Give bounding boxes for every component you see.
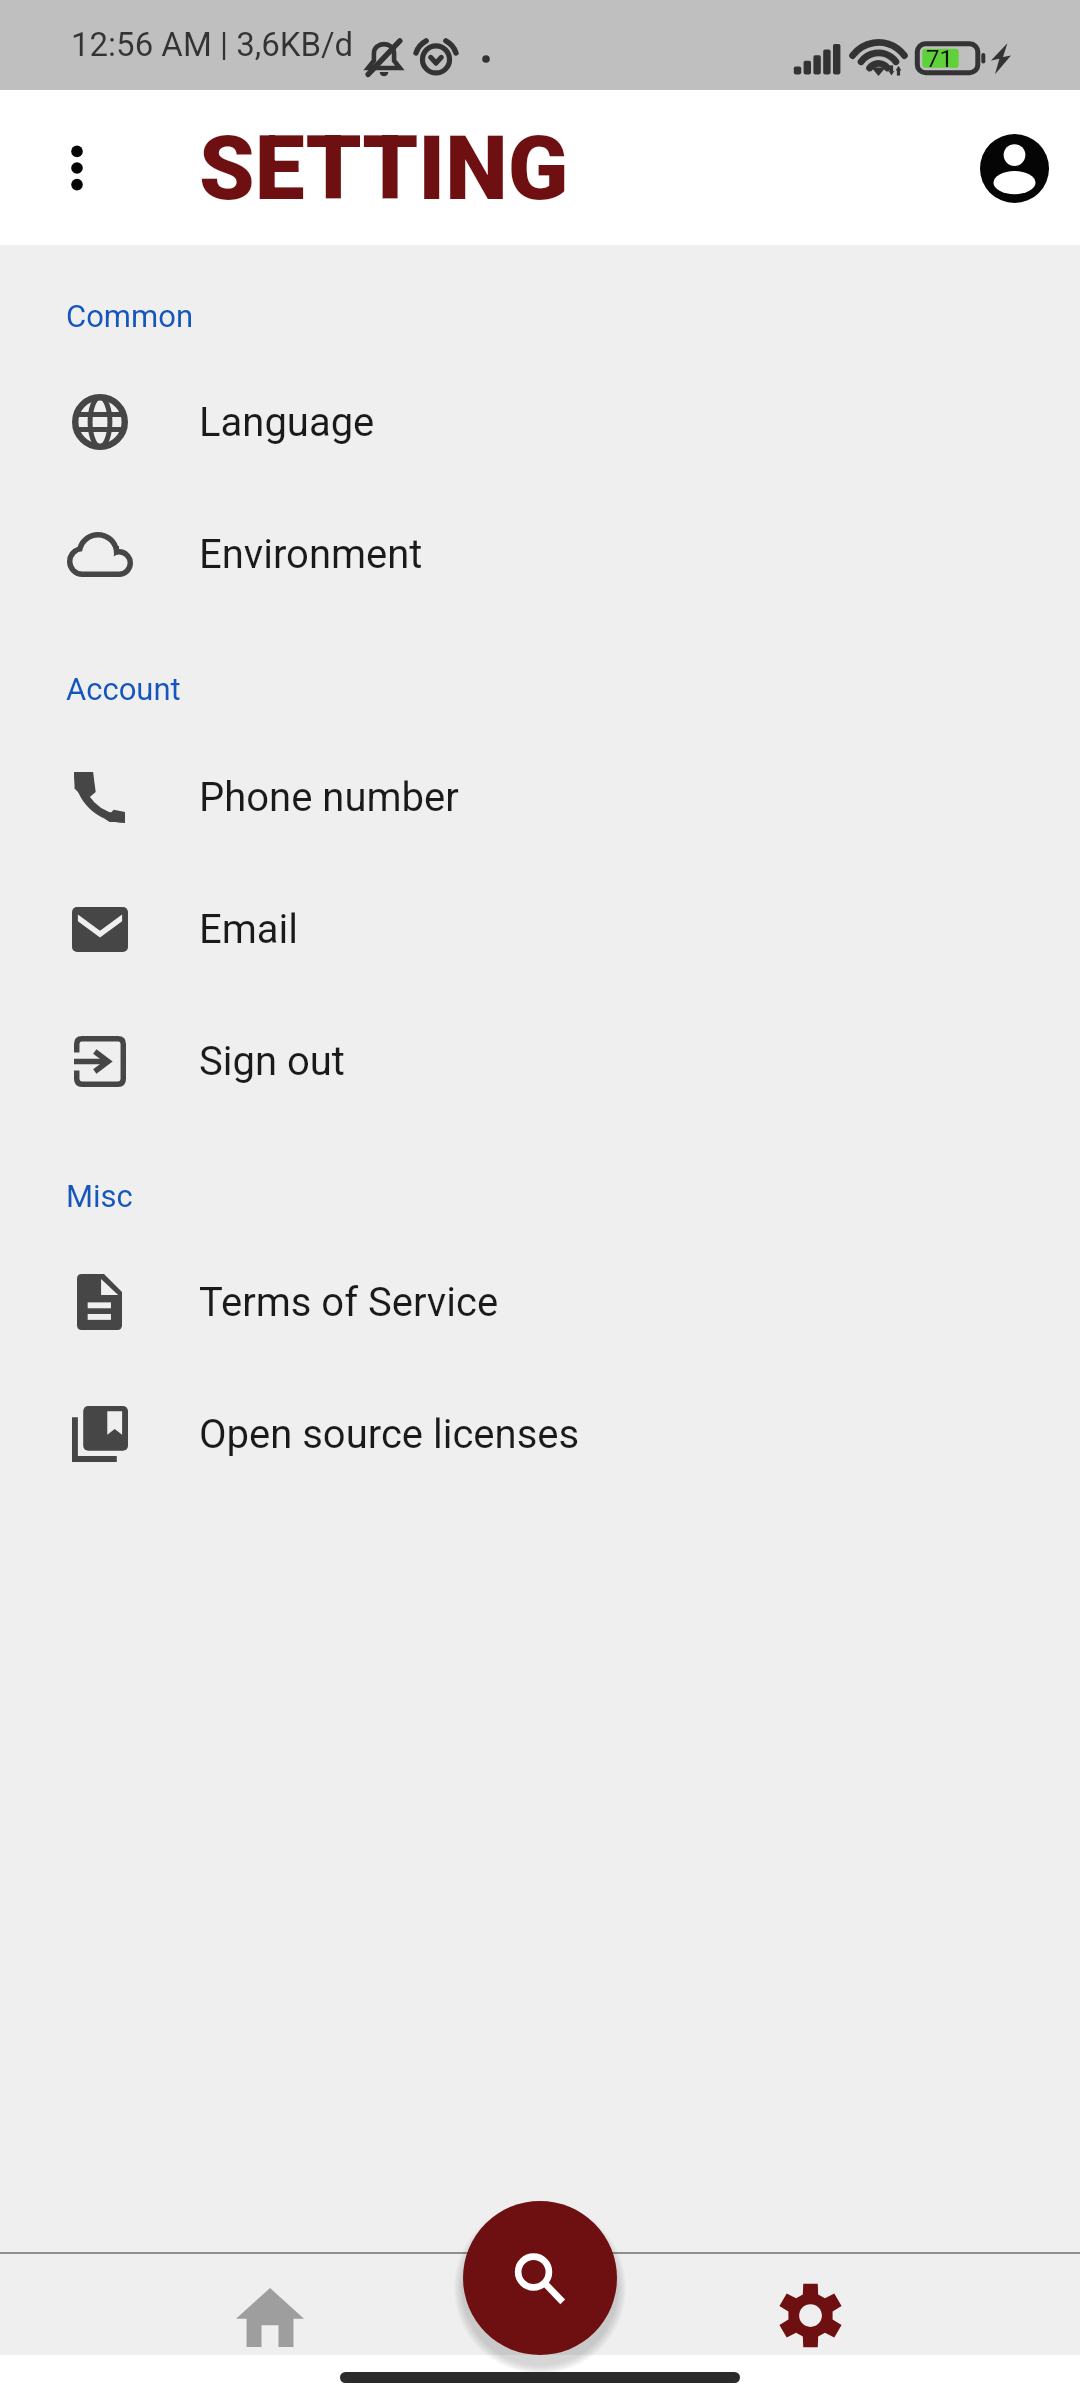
button[interactable]: Language [0,356,1080,488]
button[interactable]: Email [0,863,1080,995]
staticText: 12:56 AM | 3,6KB/d [71,25,354,64]
staticText: Terms of Service [199,1279,499,1326]
button[interactable]: Home [186,2254,354,2380]
staticText: Environment [199,531,423,578]
button[interactable]: Search [463,2201,617,2355]
staticText: 71 [926,45,953,73]
staticText: Misc [66,1178,133,1214]
staticText: Email [199,906,299,953]
button[interactable]: Sign out [0,995,1080,1127]
staticText: Open source licenses [199,1411,580,1458]
staticText: Sign out [199,1038,345,1085]
button[interactable]: Settings [726,2252,894,2378]
staticText: Language [199,399,375,446]
staticText: Account [66,671,181,707]
staticText: Common [66,298,194,334]
button[interactable]: Terms of Service [0,1236,1080,1368]
button[interactable]: Account [972,126,1056,210]
button[interactable]: Open source licenses [0,1368,1080,1500]
staticText: SETTING [199,116,569,220]
staticText: Phone number [199,774,459,821]
button[interactable]: More options [34,125,120,211]
button[interactable]: Phone number [0,731,1080,863]
button[interactable]: Environment [0,488,1080,620]
